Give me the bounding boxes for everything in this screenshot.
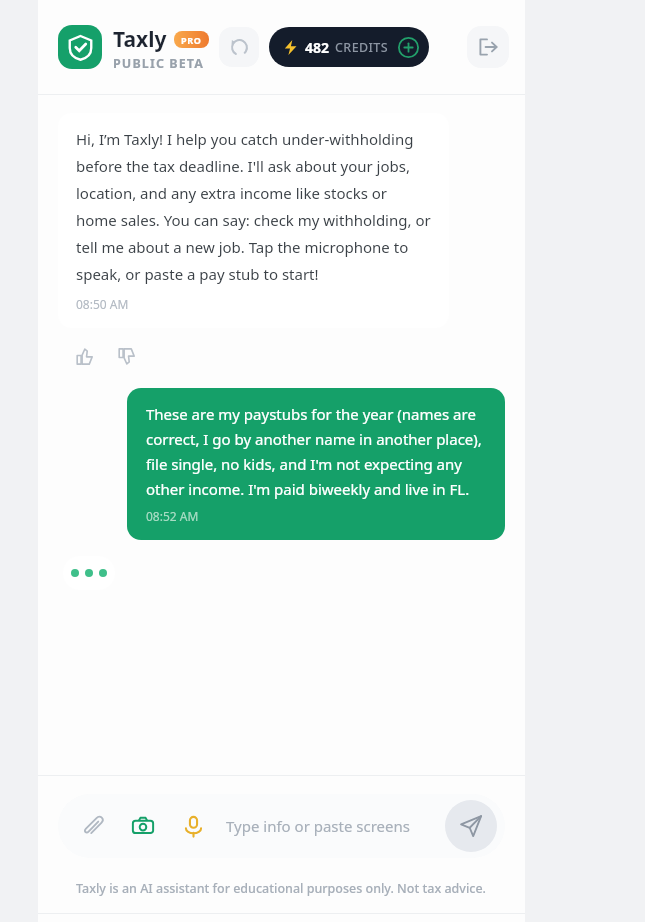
staticText: Hi, I’m Taxly! I help you catch under-wi…: [76, 129, 431, 285]
button[interactable]: These are my paystubs for the year (name…: [127, 388, 505, 540]
button[interactable]: Taxly logo: [58, 25, 102, 69]
staticText: 08:52 AM: [146, 508, 199, 524]
staticText: These are my paystubs for the year (name…: [146, 404, 486, 499]
button[interactable]: Good response: [70, 342, 98, 370]
staticText: Type info or paste screens: [226, 816, 410, 836]
button[interactable]: Bad response: [112, 342, 140, 370]
staticText: 482: [305, 38, 330, 57]
button[interactable]: Send: [445, 800, 497, 852]
staticText: PRO: [181, 34, 202, 46]
button[interactable]: Take photo: [126, 809, 160, 843]
button[interactable]: Sign out: [467, 26, 509, 68]
button[interactable]: Hi, I’m Taxly! I help you catch under-wi…: [58, 113, 449, 328]
staticText: 08:50 AM: [76, 296, 129, 312]
staticText: Taxly is an AI assistant for educational…: [76, 880, 487, 897]
button[interactable]: 482: [269, 27, 429, 67]
staticText: CREDITS: [335, 39, 389, 56]
staticText: PUBLIC BETA: [113, 55, 205, 72]
button[interactable]: Attach file: [58, 794, 505, 858]
button[interactable]: Voice input: [176, 809, 210, 843]
button[interactable]: Attach file: [76, 809, 110, 843]
button[interactable]: Reset conversation: [219, 27, 259, 67]
staticText: Taxly: [113, 25, 167, 54]
